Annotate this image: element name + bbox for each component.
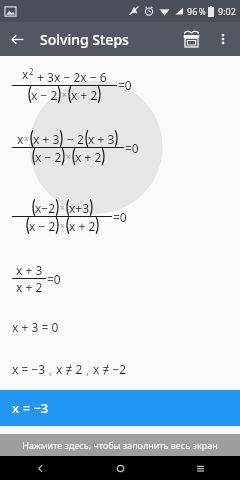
staticText: x−2	[35, 200, 56, 216]
button[interactable]: x	[0, 112, 240, 182]
button[interactable]: x = −3	[0, 390, 240, 426]
staticText: + 3x − 2x − 6	[34, 69, 107, 85]
button[interactable]: Recent apps	[160, 456, 240, 480]
button[interactable]: Back	[0, 456, 80, 480]
staticText: x + 2	[71, 87, 98, 103]
staticText: =0	[125, 140, 139, 156]
staticText: x = −3	[12, 361, 46, 377]
staticText: ×	[60, 202, 65, 213]
button[interactable]: Watch ad for gift	[174, 22, 208, 56]
button[interactable]: x	[0, 56, 240, 112]
staticText: x+3	[69, 200, 90, 216]
staticText: x ≠ −2	[93, 361, 127, 377]
button[interactable]: Back	[0, 22, 34, 56]
staticText: ×	[24, 133, 29, 144]
button[interactable]: x + 3	[0, 250, 240, 306]
button[interactable]: x + 3 = 0	[0, 306, 240, 348]
staticText: x + 2	[69, 218, 96, 234]
staticText: 96	[187, 5, 198, 17]
staticText: x − 2	[31, 87, 58, 103]
staticText: x − 2	[35, 149, 62, 165]
button[interactable]: Нажмите здесь, чтобы заполнить весь экра…	[0, 434, 240, 456]
staticText: ,	[83, 361, 93, 377]
staticText: x	[22, 66, 29, 82]
button[interactable]: x = −3	[0, 348, 240, 390]
staticText: =0	[113, 209, 127, 225]
staticText: x + 2	[16, 279, 43, 295]
staticText: x + 3 = 0	[12, 319, 59, 335]
staticText: x = −3	[12, 399, 49, 417]
staticText: =0	[47, 271, 61, 287]
button[interactable]: x−2	[0, 182, 240, 250]
staticText: x	[17, 131, 24, 147]
staticText: Solving Steps	[40, 30, 129, 49]
staticText: 9:02	[218, 5, 236, 17]
staticText: x + 3	[88, 131, 115, 147]
staticText: x ≠ 2	[56, 361, 83, 377]
staticText: ,	[46, 361, 56, 377]
staticText: ×	[62, 89, 67, 100]
staticText: %	[199, 6, 206, 17]
staticText: x − 2	[29, 218, 56, 234]
staticText: − 2	[64, 131, 84, 147]
staticText: x + 3	[16, 262, 43, 278]
staticText: x + 3	[33, 131, 60, 147]
staticText: ×	[60, 220, 65, 231]
button[interactable]: Home	[80, 456, 160, 480]
staticText: 2	[29, 66, 34, 77]
staticText: Нажмите здесь, чтобы заполнить весь экра…	[22, 439, 218, 451]
button[interactable]: More options	[208, 24, 238, 54]
staticText: x + 2	[75, 149, 102, 165]
staticText: ×	[66, 151, 71, 162]
staticText: =0	[118, 77, 132, 93]
